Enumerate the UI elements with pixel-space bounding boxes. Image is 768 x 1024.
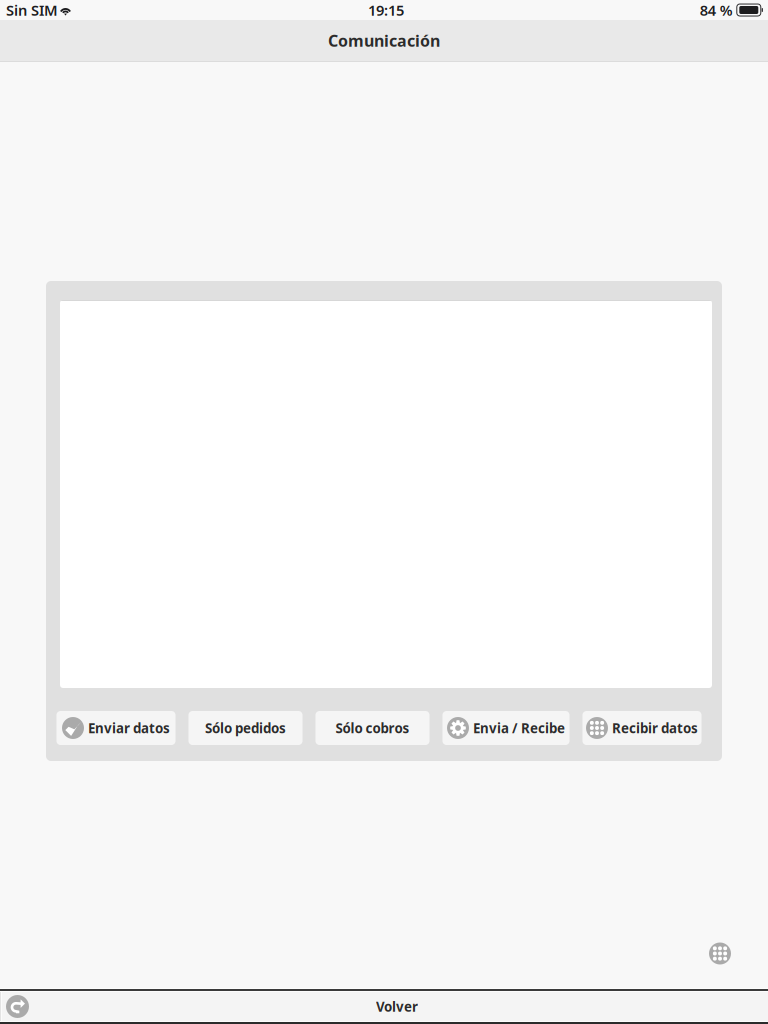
staticText: Sólo pedidos	[205, 719, 286, 737]
button[interactable]: Teclado	[709, 942, 731, 964]
staticText: Comunicación	[328, 30, 440, 51]
staticText: 19:15	[368, 0, 404, 20]
staticText: Envia / Recibe	[473, 719, 565, 737]
staticText: 84 %	[700, 0, 733, 20]
staticText: Recibir datos	[612, 719, 698, 737]
staticText: Sin SIM	[6, 0, 58, 20]
button[interactable]: Enviar datos	[56, 711, 175, 745]
button[interactable]: Recibir datos	[582, 711, 701, 745]
button[interactable]: Atrás	[6, 995, 29, 1018]
staticText: Enviar datos	[88, 719, 170, 737]
staticText: Volver	[376, 998, 418, 1015]
button[interactable]: Sólo pedidos	[188, 711, 302, 745]
button[interactable]: Envia / Recibe	[442, 711, 569, 745]
button[interactable]: Sólo cobros	[315, 711, 429, 745]
staticText: Sólo cobros	[335, 719, 409, 737]
